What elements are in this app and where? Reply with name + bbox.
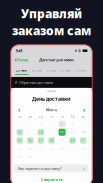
button[interactable]: 24 xyxy=(39,145,43,152)
staticText: 14 xyxy=(81,130,85,134)
staticText: Вт xyxy=(29,115,32,119)
staticText: 22 xyxy=(18,147,22,150)
staticText: 5 xyxy=(61,122,63,126)
button[interactable]: 22 xyxy=(18,145,22,152)
staticText: 28 xyxy=(81,147,85,150)
staticText: 3 xyxy=(40,122,42,126)
staticText: 9:41 xyxy=(15,48,22,53)
staticText: 4 xyxy=(50,122,52,126)
staticText: Чт xyxy=(50,115,53,119)
staticText: ‹ xyxy=(18,105,20,114)
staticText: ‹ xyxy=(14,55,16,64)
staticText: Вс xyxy=(82,115,85,119)
button[interactable]: 30 xyxy=(28,153,32,161)
staticText: ⌕ xyxy=(14,79,17,85)
button[interactable]: 21 xyxy=(80,137,86,144)
staticText: заказом сам xyxy=(12,23,91,38)
staticText: Сохранить xyxy=(40,177,62,182)
button[interactable]: 23 xyxy=(28,145,32,152)
staticText: 24 xyxy=(39,147,43,150)
staticText: Ср xyxy=(39,115,43,119)
staticText: 2 xyxy=(29,122,31,126)
button[interactable]: 23 мая xyxy=(15,67,28,74)
button[interactable]: 10 xyxy=(38,129,44,136)
staticText: 2 июня xyxy=(76,69,87,72)
staticText: 17 xyxy=(39,139,43,142)
staticText: Управляй xyxy=(21,6,82,21)
staticText: 11 xyxy=(49,130,53,134)
button[interactable]: 6 xyxy=(72,120,74,128)
staticText: Июнь xyxy=(46,107,57,112)
staticText: Как перенести доставку? xyxy=(18,166,62,171)
button[interactable]: 25 xyxy=(49,145,53,152)
staticText: 18 xyxy=(49,139,53,142)
button[interactable]: 11 xyxy=(49,129,53,136)
staticText: Сб xyxy=(71,115,75,119)
button[interactable]: 8 xyxy=(17,129,23,136)
button[interactable]: 7 xyxy=(82,120,84,128)
staticText: 19 xyxy=(60,139,64,142)
button[interactable]: 28 xyxy=(81,145,85,152)
button[interactable]: 17 xyxy=(38,137,44,144)
staticText: 1 xyxy=(19,122,21,126)
staticText: 27 мая xyxy=(61,69,71,72)
button[interactable]: Как перенести доставку? xyxy=(14,164,88,172)
staticText: 15 xyxy=(18,139,22,142)
staticText: 10 xyxy=(39,130,43,134)
button[interactable]: Следующий месяц xyxy=(80,106,87,113)
staticText: День доставки xyxy=(32,95,71,102)
staticText: 25 xyxy=(49,147,53,150)
staticText: 21 xyxy=(81,139,85,142)
staticText: Пн xyxy=(18,115,22,119)
staticText: 16 xyxy=(28,139,32,142)
staticText: 7 xyxy=(82,122,84,126)
staticText: 30 xyxy=(28,155,32,159)
button[interactable]: 18 xyxy=(48,137,55,144)
staticText: 8 xyxy=(19,130,21,134)
staticText: 6 xyxy=(72,122,74,126)
button[interactable]: 5 xyxy=(59,120,65,128)
staticText: Данные доставки xyxy=(39,57,74,62)
staticText: 13 xyxy=(71,130,75,134)
staticText: 9 xyxy=(29,130,31,134)
button[interactable]: 29 xyxy=(18,153,22,161)
button[interactable]: 26 xyxy=(60,145,64,152)
button[interactable]: ‹ xyxy=(14,55,29,64)
button[interactable]: 27 мая xyxy=(60,67,72,74)
button[interactable]: Предыдущий месяц xyxy=(15,106,22,113)
staticText: Пт xyxy=(61,115,64,119)
button[interactable]: 4 xyxy=(50,120,52,128)
staticText: › xyxy=(83,165,85,172)
staticText: 23 xyxy=(28,147,32,150)
button[interactable]: 3 xyxy=(40,120,42,128)
staticText: 24 мая xyxy=(32,69,42,72)
staticText: 29 xyxy=(18,155,22,159)
staticText: › xyxy=(83,105,85,114)
staticText: 26 xyxy=(60,147,64,150)
staticText: Обратная доставка xyxy=(19,80,53,85)
button[interactable]: 13 xyxy=(71,129,75,136)
staticText: 令 xyxy=(77,48,81,53)
button[interactable]: 9 xyxy=(29,129,31,136)
button[interactable]: 2 июня xyxy=(74,67,88,74)
button[interactable]: Сохранить xyxy=(14,175,88,183)
button[interactable]: 16 xyxy=(27,137,34,144)
staticText: 25 мая xyxy=(46,69,56,72)
button[interactable]: 25 мая xyxy=(45,67,58,74)
button[interactable]: 12 xyxy=(59,129,66,136)
button[interactable]: 27 xyxy=(71,145,75,152)
staticText: 20 xyxy=(71,139,75,142)
button[interactable]: 14 xyxy=(81,129,85,136)
button[interactable]: 24 мая xyxy=(31,67,43,74)
button[interactable]: 1 xyxy=(19,120,21,128)
staticText: 12 xyxy=(60,130,64,134)
staticText: Назад xyxy=(17,57,29,62)
staticText: ıl xyxy=(74,48,76,53)
button[interactable]: 20 xyxy=(69,137,76,144)
staticText: 27 xyxy=(71,147,75,150)
button[interactable]: 2 xyxy=(29,120,31,128)
staticText: 23 мая xyxy=(16,69,27,72)
button[interactable]: 15 xyxy=(17,137,23,144)
button[interactable]: 19 xyxy=(60,137,64,144)
